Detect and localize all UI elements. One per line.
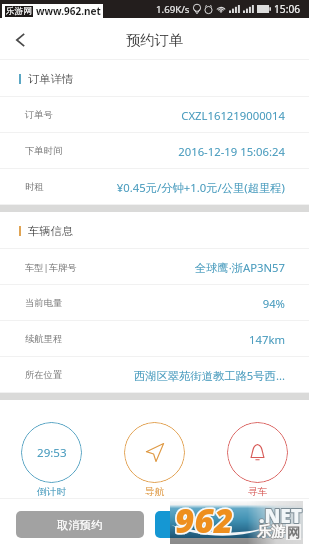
staticText: 取消预约 [57,518,103,532]
staticText: 乐游网 [6,6,32,17]
staticText: 订单详情 [28,72,74,86]
staticText: 962 [175,498,234,541]
staticText: 147km [249,332,285,347]
staticText: www.962.net [36,4,101,18]
button[interactable]: 取消预约 [16,511,144,538]
staticText: 开始用车 [202,518,248,532]
staticText: 导航 [145,486,165,498]
button[interactable]: 续航里程 [0,321,309,357]
staticText: 续航里程 [25,333,63,345]
button[interactable]: Countdown timer [0,422,103,498]
staticText: 西湖区翠苑街道教工路5号西... [133,368,285,383]
button[interactable]: Navigate [103,422,206,498]
staticText: .NET [259,503,302,529]
staticText: 1.69K/s [156,3,190,16]
staticText: 当前电量 [25,297,63,309]
staticText: 962 [175,498,234,541]
staticText: 下单时间 [25,145,63,157]
button[interactable]: 所在位置 [0,357,309,393]
staticText: 94% [262,296,285,311]
staticText: 订单号 [25,109,53,121]
staticText: 车型|车牌号 [25,261,77,274]
button[interactable]: 订单号 [0,97,309,133]
staticText: 寻车 [248,486,268,498]
staticText: CXZL161219000014 [181,108,285,123]
staticText: 2016-12-19 15:06:24 [178,144,285,159]
staticText: ¥0.45元/分钟+1.0元/公里(超里程) [116,180,285,195]
button[interactable]: Back [0,18,38,60]
button[interactable]: 当前电量 [0,285,309,321]
staticText: 所在位置 [25,369,63,381]
button[interactable]: Find car [206,422,309,498]
staticText: 15:06 [274,2,301,16]
button[interactable]: 车型|车牌号 [0,249,309,285]
staticText: 乐游 [257,523,285,541]
staticText: 车辆信息 [28,224,74,238]
button[interactable]: 下单时间 [0,133,309,169]
staticText: .NET [259,503,302,529]
button[interactable]: 时租 [0,169,309,205]
staticText: 倒计时 [37,486,67,498]
staticText: 时租 [25,181,44,193]
staticText: 乐游 [257,523,285,541]
staticText: 预约订单 [126,31,184,49]
staticText: 网 [287,524,300,540]
button[interactable]: 开始用车 [155,511,294,538]
staticText: 全球鹰·浙AP3N57 [194,260,285,275]
staticText: 29:53 [37,445,67,461]
